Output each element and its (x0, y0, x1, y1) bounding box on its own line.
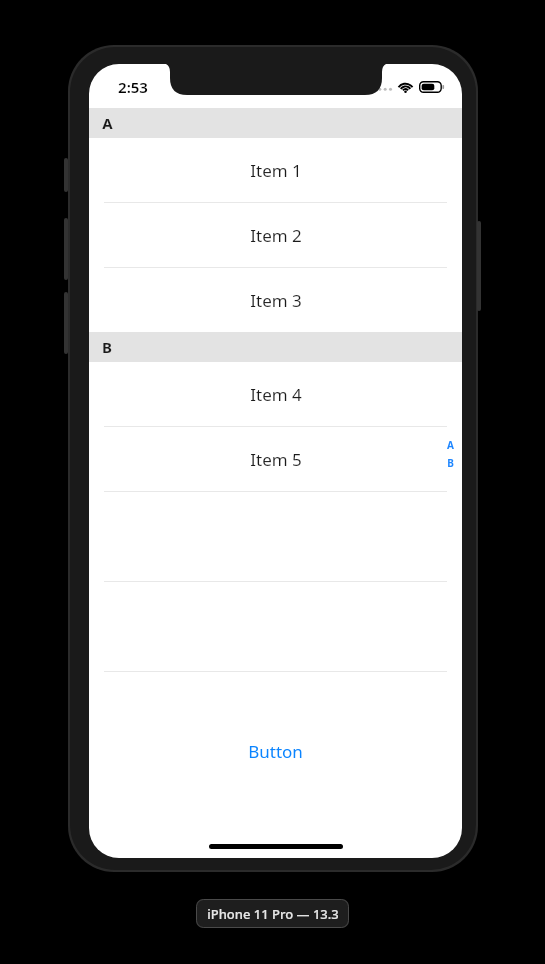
staticText: A (102, 113, 113, 133)
button[interactable]: Item 4 (89, 362, 462, 426)
button[interactable]: Item 1 (89, 138, 462, 202)
staticText: B (447, 456, 454, 470)
staticText: Item 3 (250, 289, 302, 312)
staticText: Item 1 (250, 159, 302, 182)
staticText: Item 4 (250, 383, 302, 406)
button[interactable]: Item 5 (89, 427, 462, 491)
button[interactable]: B (89, 332, 462, 362)
button[interactable]: Section index (443, 438, 457, 470)
staticText: Button (248, 740, 303, 763)
button[interactable]: Button (89, 734, 462, 768)
button[interactable]: Item 2 (89, 203, 462, 267)
staticText: iPhone 11 Pro — 13.3 (207, 905, 339, 923)
staticText: Item 5 (250, 448, 302, 471)
staticText: B (102, 337, 112, 357)
button[interactable]: Item 3 (89, 268, 462, 332)
button[interactable]: A (89, 108, 462, 138)
staticText: 2:53 (118, 77, 148, 97)
staticText: A (447, 438, 454, 452)
staticText: Item 2 (250, 224, 302, 247)
